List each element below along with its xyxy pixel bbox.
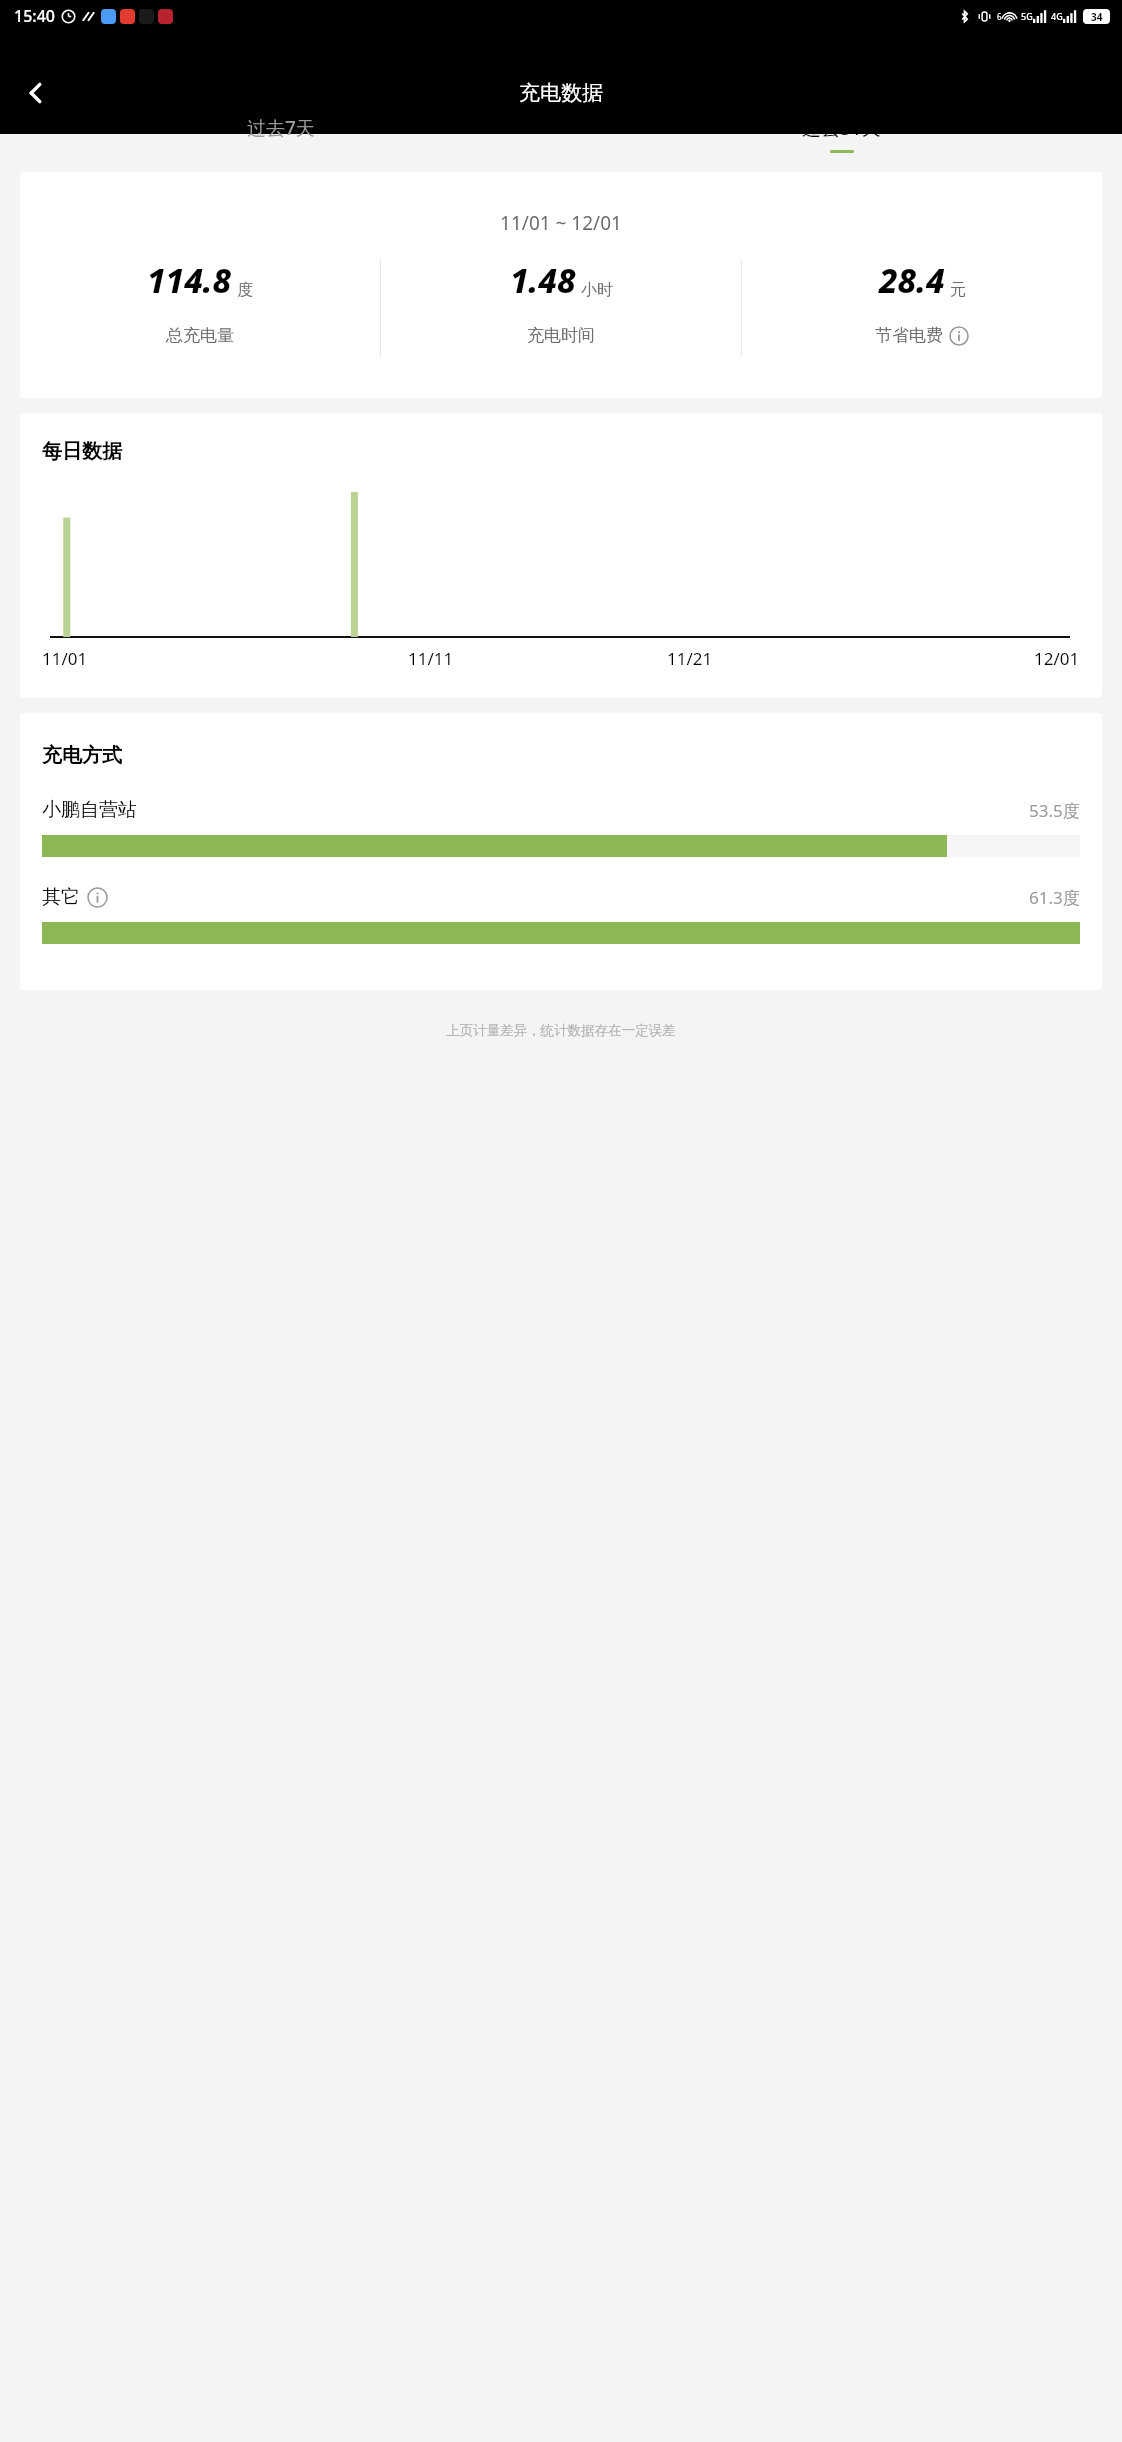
staticText: 每日数据	[42, 439, 122, 464]
staticText: 其它	[42, 885, 80, 909]
staticText: 充电方式	[42, 743, 122, 768]
button[interactable]: 说明	[949, 326, 969, 346]
staticText: 过去31天	[802, 115, 881, 141]
button[interactable]: 其它	[42, 885, 1080, 944]
staticText: 小时	[581, 280, 613, 300]
button[interactable]: Back	[10, 67, 62, 119]
staticText: 上页计量差异，统计数据存在一定误差	[0, 1022, 1122, 1039]
staticText: 小鹏自营站	[42, 798, 137, 822]
staticText: 11/11	[408, 647, 454, 670]
staticText: 28.4	[879, 258, 945, 303]
staticText: 充电数据	[519, 80, 603, 106]
staticText: 61.3度	[1029, 886, 1080, 909]
staticText: 1.48	[510, 258, 576, 303]
staticText: 11/01	[42, 647, 88, 670]
staticText: 节省电费	[875, 325, 943, 346]
staticText: 53.5度	[1029, 799, 1080, 822]
staticText: 114.8	[147, 258, 232, 303]
staticText: 元	[950, 280, 966, 300]
staticText: 充电时间	[527, 325, 595, 346]
staticText: 12/01	[1034, 647, 1080, 670]
staticText: 11/21	[667, 647, 713, 670]
button[interactable]: 过去7天	[0, 134, 561, 166]
button[interactable]: 小鹏自营站	[42, 798, 1080, 857]
staticText: 5G	[1021, 10, 1033, 22]
staticText: 4G	[1051, 10, 1063, 22]
staticText: 度	[237, 280, 253, 300]
staticText: 过去7天	[247, 115, 315, 141]
staticText: 6	[997, 11, 1002, 22]
staticText: 11/01 ~ 12/01	[20, 210, 1102, 236]
button[interactable]: 过去31天	[561, 134, 1122, 166]
staticText: 总充电量	[166, 325, 234, 346]
staticText: 34	[1091, 10, 1103, 24]
staticText: 15:40	[14, 5, 55, 27]
button[interactable]: 说明	[87, 887, 108, 908]
